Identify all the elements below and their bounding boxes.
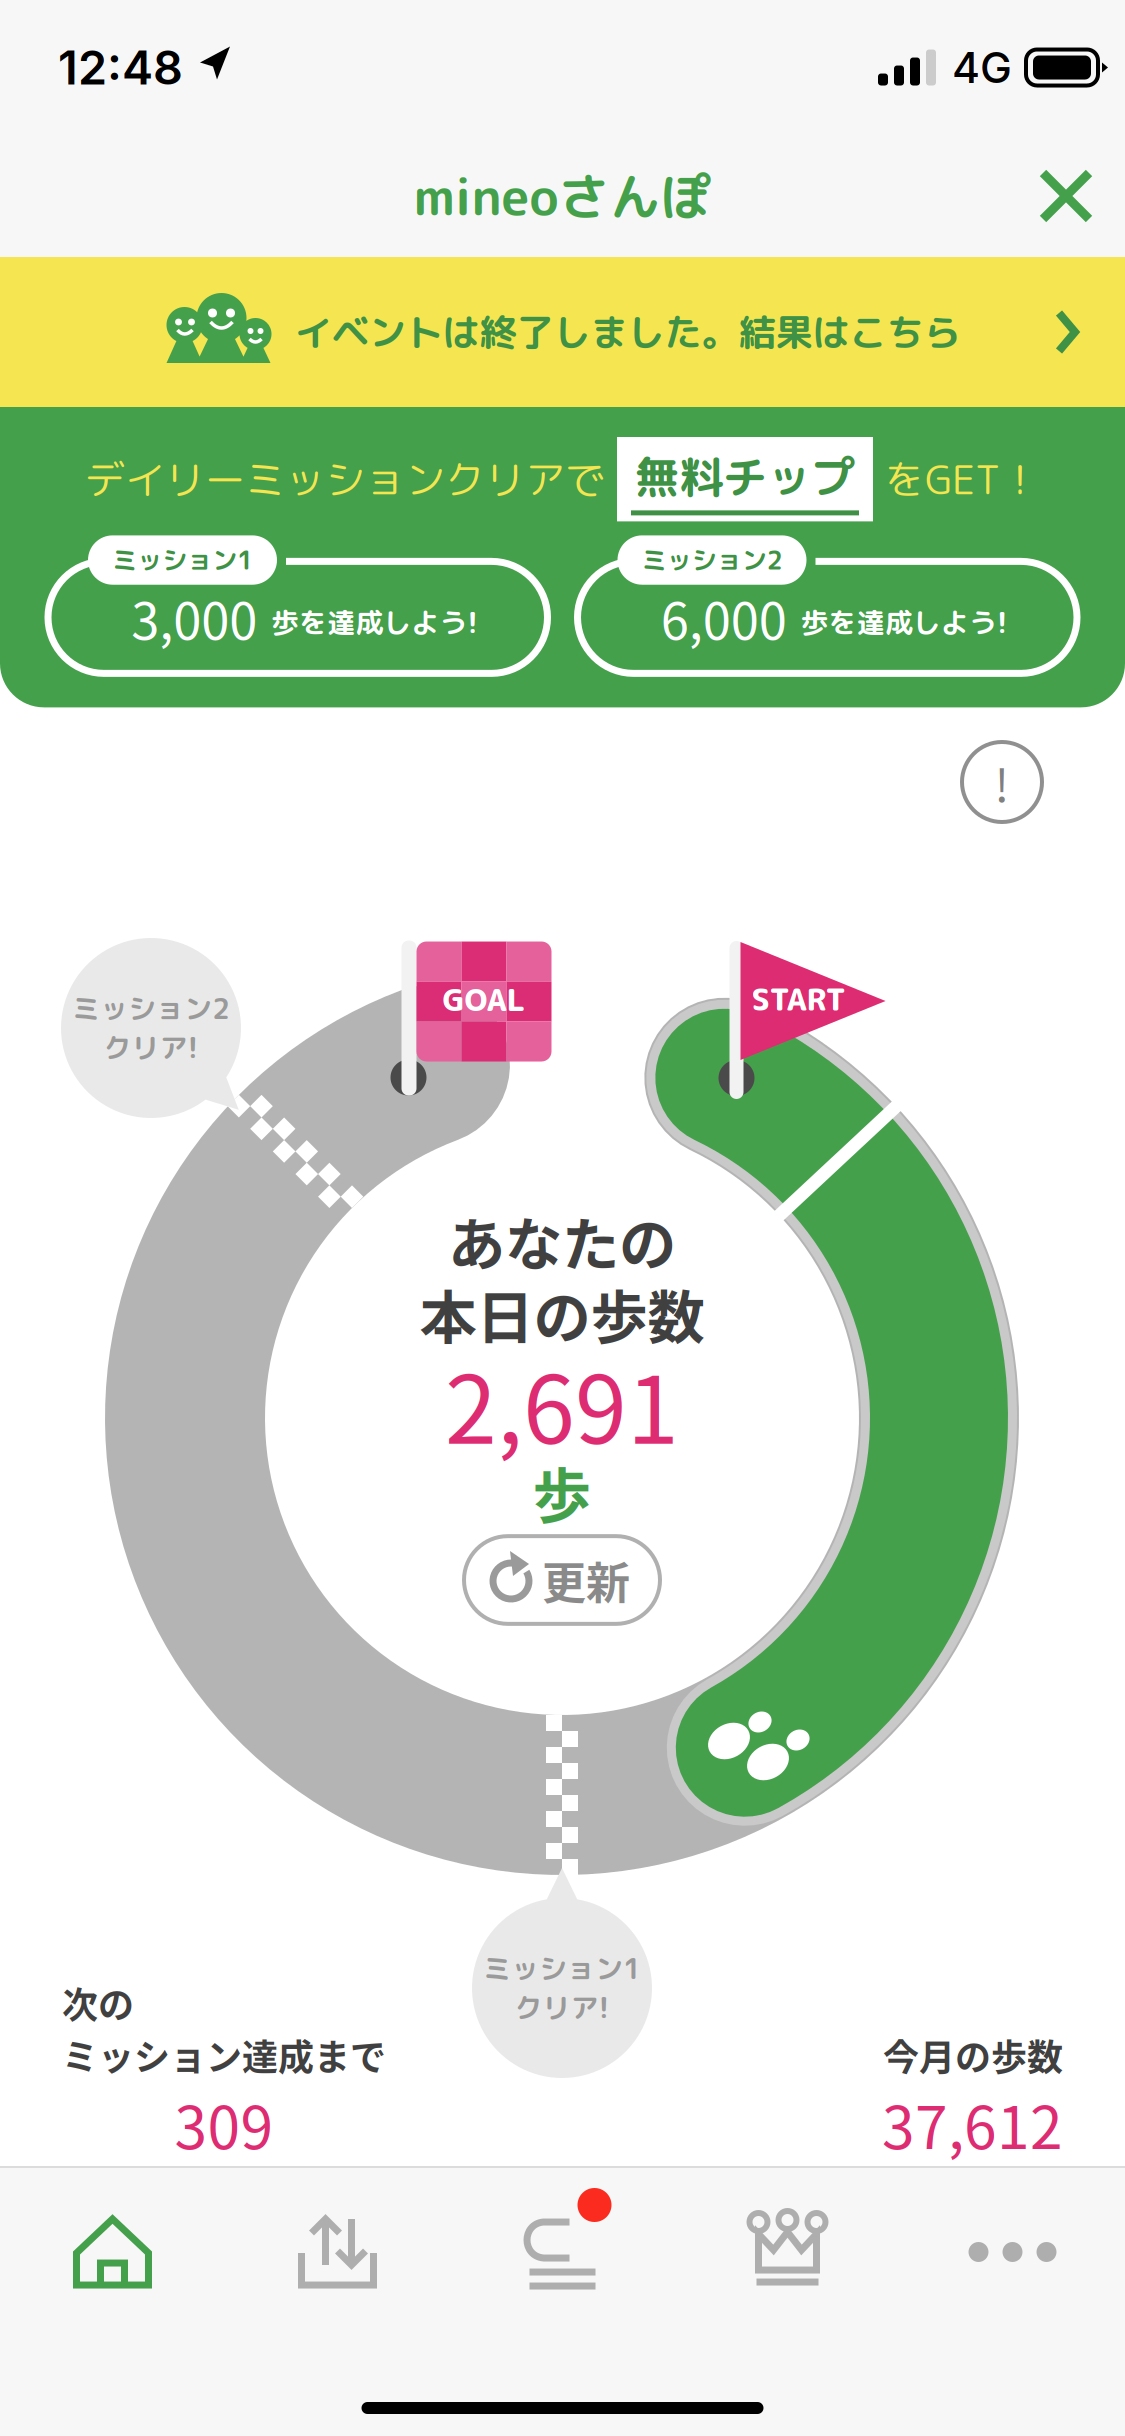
staticText: あなたの — [448, 1199, 676, 1282]
staticText: をGET！ — [885, 451, 1040, 507]
staticText: 次の — [62, 1977, 134, 2029]
staticText: ミッション2 — [641, 542, 782, 578]
button[interactable]: 更新 — [464, 1536, 660, 1624]
staticText: ミッション1 — [483, 1949, 641, 1988]
button[interactable]: Community — [450, 2212, 675, 2292]
button[interactable]: Information — [946, 726, 1058, 838]
button[interactable]: Rewards — [675, 2212, 900, 2292]
staticText: GOAL — [442, 978, 525, 1021]
staticText: ! — [994, 749, 1009, 815]
staticText: クリア! — [514, 1988, 609, 2027]
staticText: mineoさんぽ — [413, 161, 711, 231]
button[interactable]: Steps data — [225, 2213, 450, 2291]
staticText: 無料チップ — [635, 446, 855, 507]
staticText: ミッション達成まで — [62, 2029, 386, 2081]
staticText: 今月の歩数 — [883, 2029, 1063, 2081]
staticText: 37,612 — [882, 2081, 1063, 2166]
button[interactable]: More — [900, 2212, 1125, 2292]
staticText: 2,691 — [445, 1336, 679, 1471]
staticText: クリア! — [103, 1028, 198, 1067]
staticText: 本日の歩数 — [419, 1272, 704, 1355]
staticText: 歩 — [532, 1450, 591, 1535]
button[interactable]: イベントは終了しました。結果はこちら — [0, 257, 1125, 407]
staticText: ミッション2 — [72, 989, 230, 1028]
staticText: イベントは終了しました。結果はこちら — [294, 306, 960, 358]
staticText: 3,000 — [131, 581, 257, 654]
staticText: デイリーミッションクリアで — [85, 451, 605, 507]
staticText: ミッション1 — [112, 542, 253, 578]
staticText: 更新 — [542, 1548, 630, 1612]
button[interactable]: Home — [0, 2213, 225, 2291]
staticText: 歩を達成しよう! — [271, 603, 478, 642]
staticText: 4G — [952, 42, 1012, 93]
button[interactable]: Close — [1007, 141, 1125, 251]
staticText: START — [751, 978, 845, 1020]
staticText: 歩を達成しよう! — [801, 603, 1008, 642]
staticText: 12:48 — [58, 39, 183, 96]
staticText: 309 — [174, 2081, 273, 2166]
staticText: 6,000 — [661, 581, 787, 654]
